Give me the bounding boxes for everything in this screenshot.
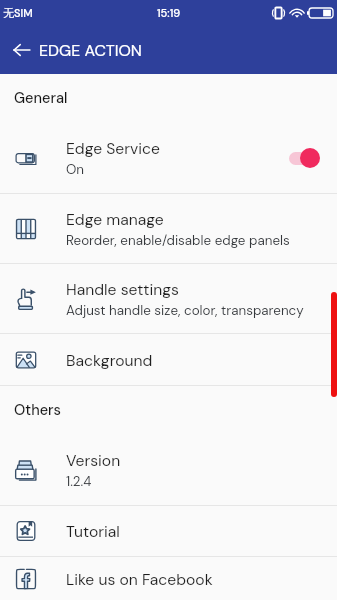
staticText: 无SIM (3, 6, 33, 20)
staticText: Edge Service (66, 138, 160, 158)
staticText: 15:19 (157, 6, 181, 20)
staticText: Edge manage (66, 209, 164, 229)
button[interactable]: Back (4, 32, 40, 68)
staticText: EDGE ACTION (39, 40, 142, 61)
staticText: Like us on Facebook (66, 569, 213, 589)
staticText: Version (66, 450, 121, 470)
staticText: Reorder, enable/disable edge panels (66, 232, 290, 249)
button[interactable]: Background (0, 334, 337, 385)
button[interactable]: Edge Service (0, 123, 337, 193)
staticText: Handle settings (66, 279, 179, 299)
staticText: Others (14, 401, 62, 420)
button[interactable]: Edge handle (331, 292, 337, 397)
button[interactable]: Tutorial (0, 506, 337, 556)
staticText: Background (66, 350, 153, 370)
staticText: 1.2.4 (66, 473, 92, 490)
button[interactable]: Edge manage (0, 194, 337, 263)
staticText: Adjust handle size, color, transparency (66, 302, 304, 319)
staticText: On (66, 161, 85, 178)
button[interactable]: Toggle Edge Service (287, 146, 325, 170)
button[interactable]: Handle settings (0, 264, 337, 333)
button[interactable]: Version (0, 435, 337, 505)
button[interactable]: Like us on Facebook (0, 557, 337, 600)
staticText: Tutorial (66, 521, 120, 541)
staticText: General (14, 89, 68, 108)
